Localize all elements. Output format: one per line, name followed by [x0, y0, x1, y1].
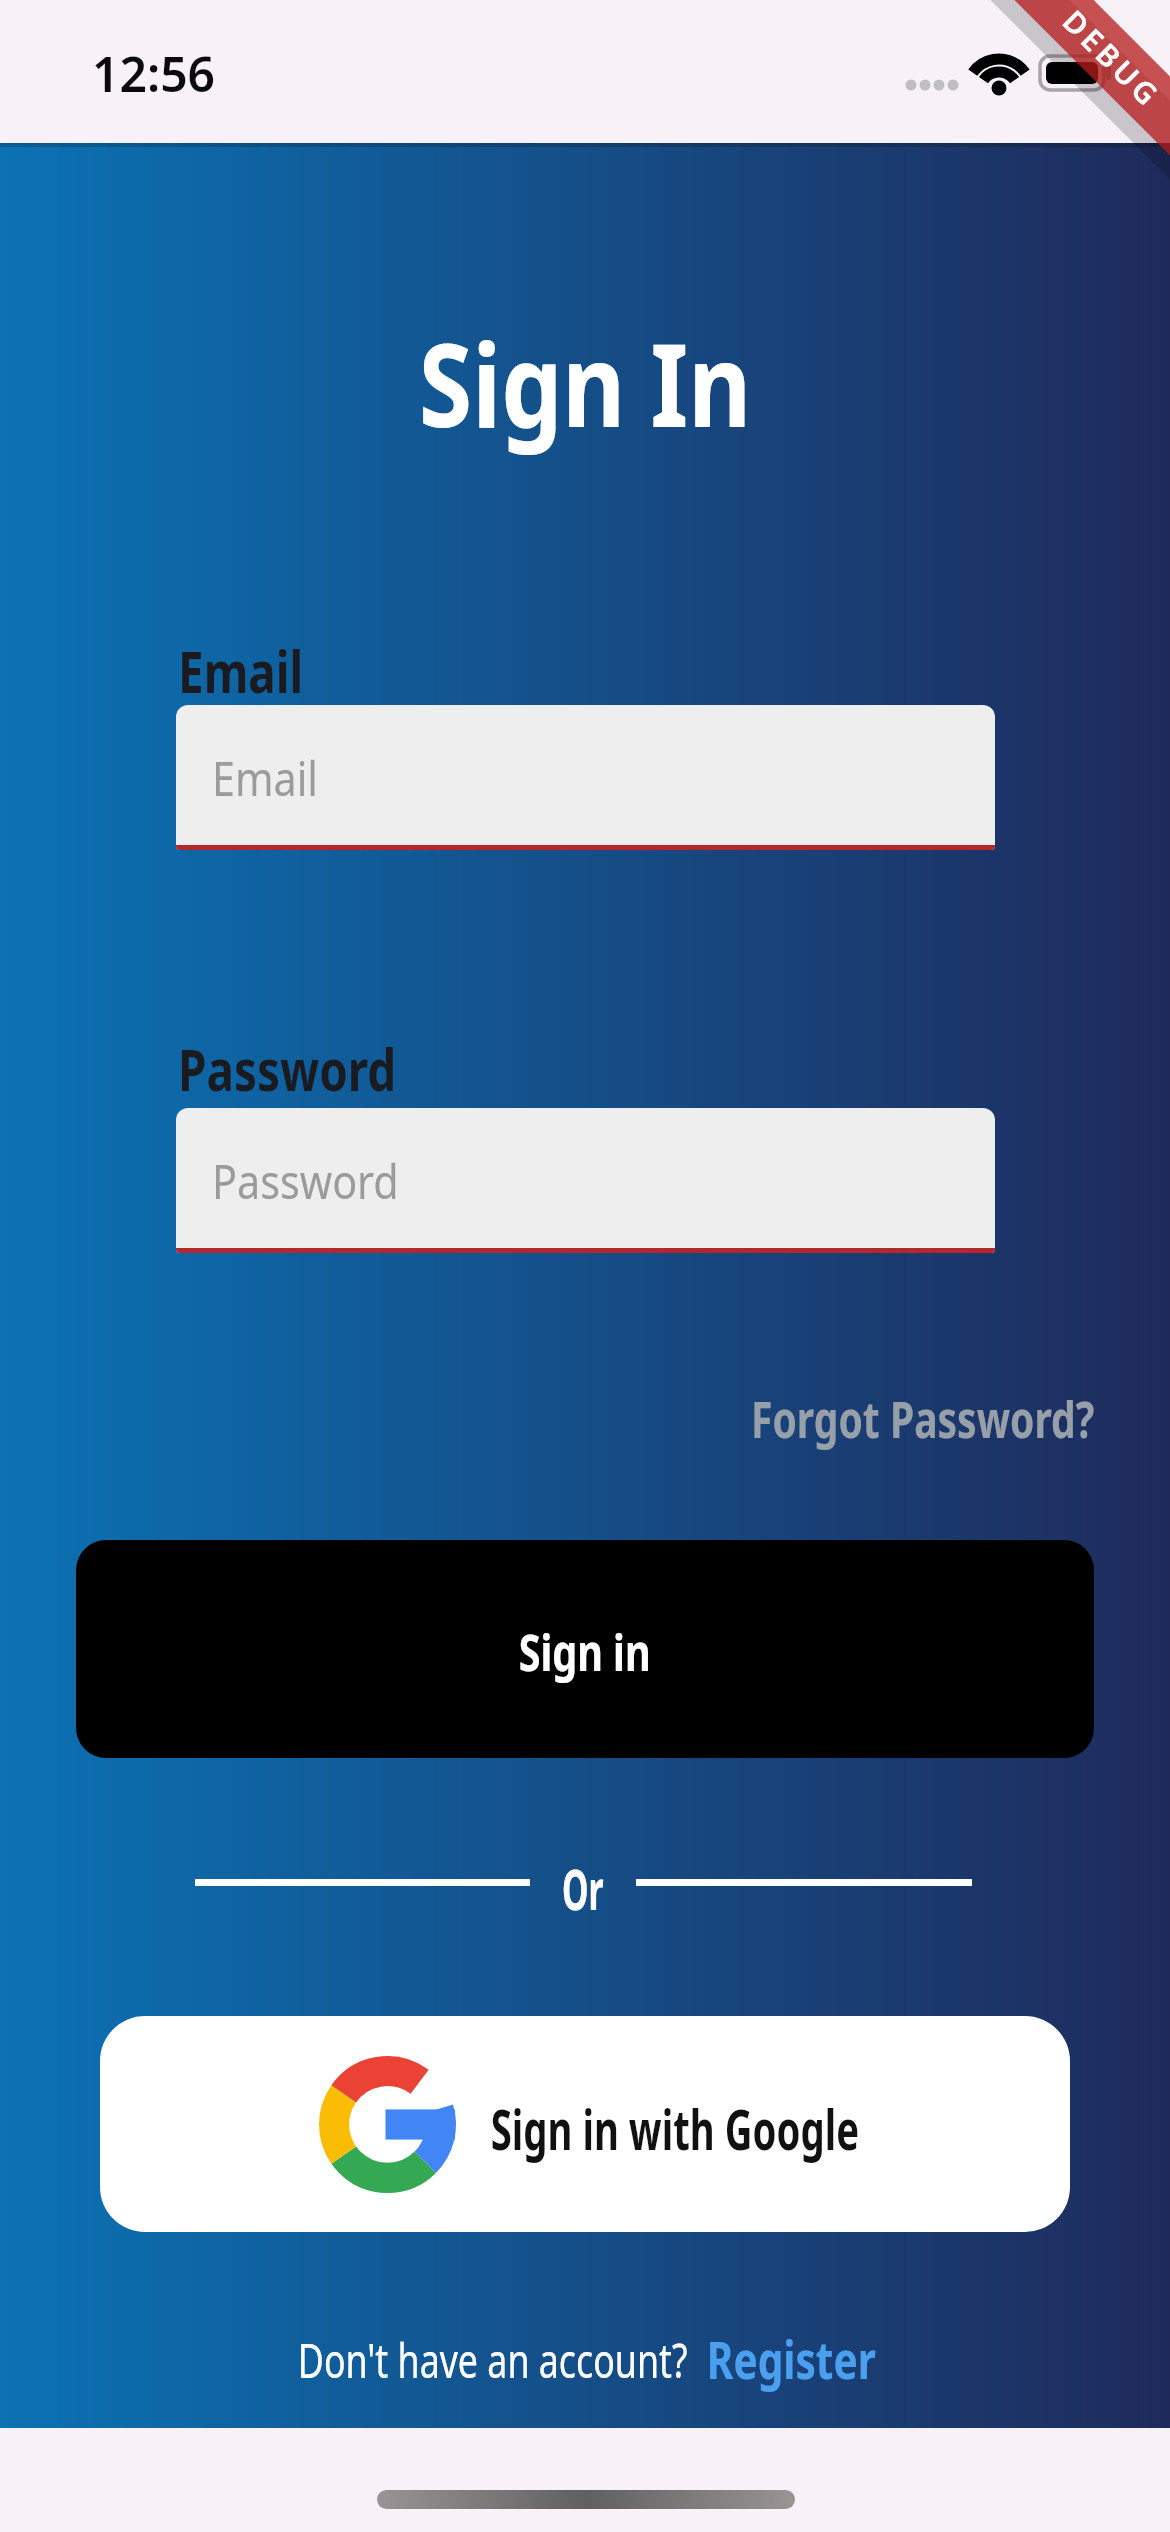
button[interactable]: Forgot Password? — [751, 1385, 1095, 1453]
staticText: Password — [178, 1029, 397, 1108]
staticText: Sign in — [519, 1618, 651, 1686]
staticText: Or — [562, 1850, 604, 1914]
staticText: Sign in with Google — [491, 2090, 859, 2166]
staticText: Sign In — [88, 305, 1082, 460]
staticText: Email — [212, 745, 319, 810]
staticText: Don't have an account? — [298, 2327, 688, 2392]
staticText: 12:56 — [92, 41, 216, 106]
button[interactable]: Sign in with Google — [100, 2016, 1070, 2232]
button[interactable]: Password — [176, 1108, 995, 1253]
staticText: Email — [178, 631, 304, 710]
staticText: DEBUG — [1054, 1, 1170, 117]
button[interactable]: Register — [707, 2323, 876, 2394]
staticText: Password — [212, 1148, 399, 1213]
button[interactable]: Sign in — [76, 1540, 1094, 1758]
button[interactable]: Email — [176, 705, 995, 850]
